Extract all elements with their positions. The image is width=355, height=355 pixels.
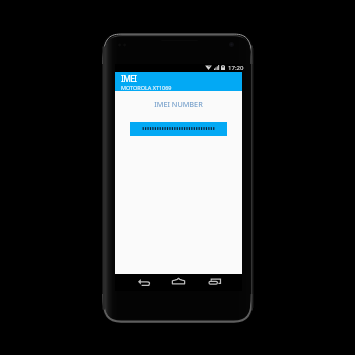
button[interactable]: Home bbox=[170, 275, 186, 287]
button[interactable] bbox=[130, 122, 227, 136]
button[interactable]: Back bbox=[136, 276, 151, 288]
staticText: IMEI bbox=[121, 73, 137, 84]
staticText: IMEI NUMBER bbox=[115, 99, 242, 109]
staticText: 17:20 bbox=[228, 63, 244, 71]
button[interactable]: Recent apps bbox=[206, 275, 222, 287]
staticText: MOTOROLA XT1069 bbox=[121, 84, 172, 91]
